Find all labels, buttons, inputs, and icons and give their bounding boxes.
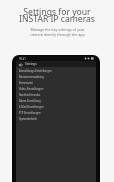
button[interactable]: Nachtsichtmodus: [16, 92, 96, 98]
staticText: Settings: [25, 62, 37, 66]
staticText: Kamerazeit: [19, 81, 33, 85]
staticText: Video-Einstellungen: [19, 87, 44, 91]
staticText: 09:41: [19, 57, 26, 61]
staticText: FTP Einstellungen: [19, 111, 41, 115]
button[interactable]: Video-Einstellungen: [16, 86, 96, 92]
staticText: Settings for your INSTAR IP cameras: [19, 6, 95, 25]
button[interactable]: Benutzerverwaltung: [16, 74, 96, 80]
button[interactable]: Systembefehle: [16, 116, 96, 122]
staticText: Nachtsichtmodus: [19, 93, 41, 97]
button[interactable]: Back: [18, 62, 23, 67]
staticText: Alarm-Einstellung: [19, 99, 41, 103]
staticText: Manage the key settings of your camera d…: [30, 27, 85, 37]
staticText: Benutzerverwaltung: [19, 75, 44, 79]
button[interactable]: E-Mail Einstellungen: [16, 104, 96, 110]
button[interactable]: Alarm-Einstellung: [16, 98, 96, 104]
button[interactable]: Anmeldungs-Einstellungen: [16, 68, 96, 74]
staticText: Anmeldungs-Einstellungen: [19, 69, 52, 73]
staticText: Systembefehle: [19, 117, 37, 121]
button[interactable]: Kamerazeit: [16, 80, 96, 86]
staticText: E-Mail Einstellungen: [19, 105, 44, 109]
button[interactable]: FTP Einstellungen: [16, 110, 96, 116]
